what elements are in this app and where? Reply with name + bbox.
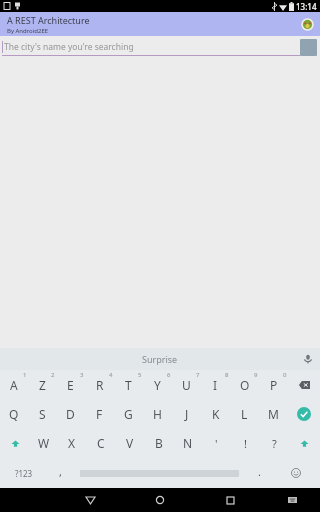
staticText: ! (244, 436, 247, 451)
button[interactable]: Shift (289, 428, 320, 458)
button[interactable]: P (259, 370, 288, 399)
button[interactable]: Enter (288, 399, 320, 428)
staticText: X (68, 435, 76, 451)
button[interactable]: Back (78, 488, 102, 512)
staticText: U (182, 377, 191, 393)
button[interactable]: Voice input (302, 353, 314, 365)
button[interactable]: N (173, 428, 202, 458)
button[interactable]: I (201, 370, 230, 399)
staticText: . (258, 464, 261, 479)
staticText: P (270, 377, 278, 393)
button[interactable]: Backspace (288, 370, 320, 399)
button[interactable]: R (85, 370, 114, 399)
button[interactable]: D (56, 399, 85, 428)
button[interactable]: App logo (301, 18, 314, 31)
button[interactable]: J (172, 399, 201, 428)
button[interactable]: W (30, 428, 58, 458)
button[interactable]: A (0, 370, 28, 399)
button[interactable]: C (86, 428, 115, 458)
staticText: ' (215, 436, 218, 451)
button[interactable]: X (58, 428, 86, 458)
button[interactable]: H (143, 399, 172, 428)
staticText: 6 (167, 371, 171, 379)
staticText: 5 (138, 371, 142, 379)
button[interactable]: Recents (218, 488, 242, 512)
button[interactable]: ? (260, 428, 289, 458)
staticText: F (96, 406, 103, 422)
staticText: S (39, 406, 46, 422)
staticText: O (240, 377, 250, 393)
staticText: 0 (283, 371, 287, 379)
staticText: V (126, 435, 134, 451)
button[interactable]: ! (231, 428, 260, 458)
staticText: Z (39, 377, 46, 393)
button[interactable]: U (172, 370, 201, 399)
staticText: By Android2EE (7, 27, 49, 35)
staticText: E (67, 377, 74, 393)
button[interactable]: Surprise (142, 353, 178, 365)
staticText: M (268, 406, 279, 422)
staticText: R (96, 377, 104, 393)
button[interactable]: L (230, 399, 259, 428)
staticText: A REST Architecture (7, 14, 90, 26)
staticText: 7 (196, 371, 200, 379)
staticText: L (241, 406, 248, 422)
button[interactable]: O (230, 370, 259, 399)
button[interactable]: G (114, 399, 143, 428)
staticText: 4 (109, 371, 113, 379)
staticText: G (124, 406, 133, 422)
button[interactable]: Y (143, 370, 172, 399)
staticText: , (59, 464, 62, 479)
staticText: 13:14 (296, 1, 317, 12)
staticText: C (97, 435, 105, 451)
button[interactable]: T (114, 370, 143, 399)
button[interactable]: B (144, 428, 173, 458)
button[interactable]: S (28, 399, 56, 428)
staticText: N (183, 435, 193, 451)
button[interactable]: . (246, 458, 272, 488)
button[interactable]: The city's name you're searching (0, 36, 300, 58)
button[interactable]: Shift (0, 428, 30, 458)
staticText: 2 (51, 371, 55, 379)
button[interactable]: E (56, 370, 85, 399)
button[interactable]: Switch keyboard (282, 490, 302, 510)
staticText: 1 (23, 371, 27, 379)
staticText: W (38, 435, 50, 451)
button[interactable]: F (85, 399, 114, 428)
button[interactable]: Q (0, 399, 28, 428)
staticText: J (185, 406, 189, 422)
button[interactable]: , (47, 458, 73, 488)
staticText: H (153, 406, 162, 422)
staticText: ?123 (15, 468, 33, 479)
staticText: A (10, 377, 18, 393)
staticText: B (155, 435, 163, 451)
button[interactable]: Space (73, 458, 246, 488)
staticText: The city's name you're searching (4, 41, 134, 53)
staticText: 8 (225, 371, 229, 379)
staticText: K (212, 406, 220, 422)
staticText: 3 (80, 371, 84, 379)
button[interactable]: ' (202, 428, 231, 458)
button[interactable]: Home (148, 488, 172, 512)
staticText: T (125, 377, 132, 393)
staticText: Y (154, 377, 161, 393)
staticText: ? (272, 436, 277, 451)
staticText: Q (9, 406, 19, 422)
button[interactable]: Emoji (272, 458, 320, 488)
staticText: I (213, 377, 218, 393)
staticText: D (66, 406, 75, 422)
button[interactable]: K (201, 399, 230, 428)
staticText: 9 (254, 371, 258, 379)
button[interactable]: ?123 (0, 458, 47, 488)
button[interactable]: Z (28, 370, 56, 399)
button[interactable]: M (259, 399, 288, 428)
button[interactable]: V (115, 428, 144, 458)
